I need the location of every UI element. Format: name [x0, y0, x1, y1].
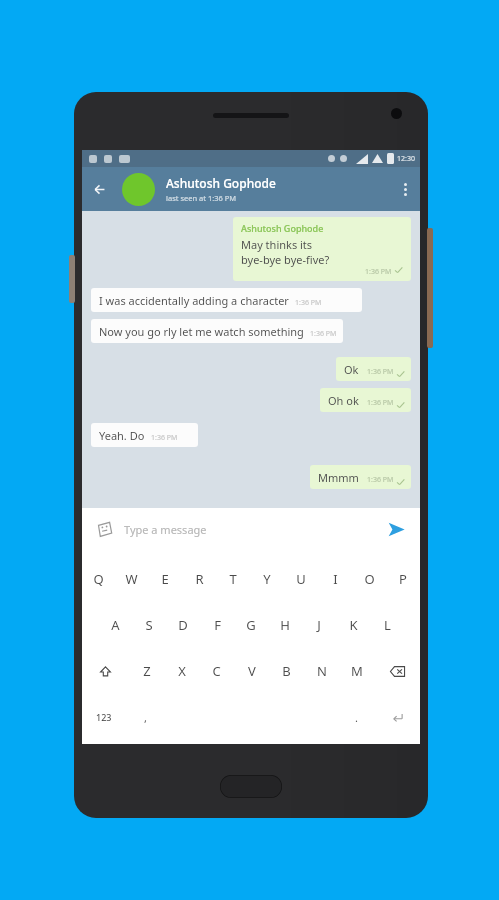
staticText: Now you go rly let me watch something [99, 324, 304, 339]
staticText: , [144, 710, 147, 725]
button[interactable]: Yeah. Do [91, 423, 198, 447]
button[interactable]: . [337, 694, 375, 740]
button[interactable]: Ok [336, 357, 411, 381]
staticText: H [280, 616, 290, 634]
staticText: Ashutosh Gophode [241, 222, 324, 234]
staticText: Yeah. Do [99, 428, 145, 443]
staticText: C [212, 662, 221, 680]
button[interactable]: Now you go rly let me watch something [91, 319, 343, 343]
button[interactable]: More options [390, 174, 420, 204]
button[interactable]: Shift [82, 648, 129, 694]
button[interactable]: L [370, 602, 404, 648]
button[interactable]: Enter [375, 694, 420, 740]
staticText: Ok [344, 362, 359, 377]
staticText: 1:36 PM [367, 398, 394, 408]
staticText: A [111, 616, 120, 634]
button[interactable]: Mmmm [310, 465, 411, 489]
button[interactable]: S [132, 602, 166, 648]
button[interactable]: B [269, 648, 304, 694]
staticText: U [296, 570, 306, 588]
button[interactable]: Send [382, 515, 410, 543]
button[interactable]: F [200, 602, 234, 648]
staticText: Z [143, 662, 151, 680]
staticText: I was accidentally adding a character [99, 293, 289, 308]
staticText: Type a message [124, 522, 382, 537]
staticText: 1:36 PM [310, 329, 337, 339]
button[interactable]: R [182, 556, 216, 602]
staticText: F [214, 616, 221, 634]
staticText: 1:36 PM [367, 367, 394, 377]
button[interactable]: H [268, 602, 302, 648]
staticText: 1:36 PM [151, 433, 178, 443]
staticText: K [349, 616, 358, 634]
staticText: E [161, 570, 169, 588]
button[interactable]: Y [250, 556, 284, 602]
staticText: May thinks its bye-bye bye-five? [241, 237, 330, 267]
button[interactable]: K [336, 602, 370, 648]
button[interactable]: U [284, 556, 318, 602]
staticText: V [248, 662, 256, 680]
staticText: X [178, 662, 186, 680]
staticText: O [364, 570, 375, 588]
staticText: J [317, 616, 321, 634]
staticText: M [351, 662, 363, 680]
staticText: 123 [96, 711, 112, 723]
staticText: 12:30 [397, 154, 415, 164]
button[interactable]: Emoji [92, 517, 116, 541]
staticText: Q [93, 570, 104, 588]
button[interactable]: 123 [82, 694, 126, 740]
button[interactable]: A [98, 602, 132, 648]
staticText: Oh ok [328, 393, 359, 408]
staticText: last seen at 1:36 PM [166, 193, 237, 203]
button[interactable]: P [386, 556, 420, 602]
staticText: I [333, 570, 338, 588]
button[interactable]: , [126, 694, 164, 740]
staticText: D [178, 616, 188, 634]
staticText: Y [263, 570, 271, 588]
staticText: Mmmm [318, 470, 359, 485]
button[interactable]: Backspace [374, 648, 420, 694]
staticText: L [384, 616, 391, 634]
staticText: R [195, 570, 204, 588]
button[interactable]: W [115, 556, 148, 602]
button[interactable]: I was accidentally adding a character [91, 288, 362, 312]
button[interactable]: J [302, 602, 336, 648]
button[interactable]: Z [129, 648, 164, 694]
staticText: G [246, 616, 256, 634]
staticText: 1:36 PM [295, 298, 322, 308]
button[interactable]: Ashutosh Gophode [233, 217, 411, 281]
staticText: P [399, 570, 407, 588]
staticText: Ashutosh Gophode [166, 175, 276, 191]
button[interactable]: Q [82, 556, 115, 602]
button[interactable]: D [166, 602, 200, 648]
button[interactable]: M [339, 648, 374, 694]
button[interactable]: I [318, 556, 352, 602]
button[interactable]: N [304, 648, 339, 694]
button[interactable]: Oh ok [320, 388, 411, 412]
button[interactable]: T [216, 556, 250, 602]
staticText: W [125, 570, 138, 588]
button[interactable]: O [352, 556, 386, 602]
button[interactable]: E [148, 556, 182, 602]
button[interactable]: C [199, 648, 234, 694]
button[interactable]: Back [82, 172, 116, 206]
staticText: N [317, 662, 327, 680]
staticText: . [355, 710, 358, 725]
staticText: B [282, 662, 291, 680]
staticText: 1:36 PM [365, 267, 392, 277]
button[interactable]: X [164, 648, 199, 694]
staticText: S [145, 616, 153, 634]
staticText: T [229, 570, 237, 588]
button[interactable]: G [234, 602, 268, 648]
button[interactable]: V [234, 648, 269, 694]
button[interactable]: Contact photo [122, 173, 155, 206]
staticText: 1:36 PM [367, 475, 394, 485]
